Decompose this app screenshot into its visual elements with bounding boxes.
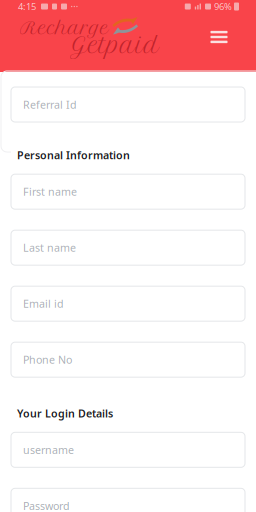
staticText: Getpaid bbox=[70, 32, 160, 59]
button[interactable]: username bbox=[11, 432, 245, 467]
button[interactable]: Menu bbox=[201, 19, 237, 55]
staticText: Last name bbox=[23, 241, 76, 255]
staticText: 4:15 bbox=[18, 0, 36, 13]
button[interactable]: Last name bbox=[11, 230, 245, 265]
staticText: Personal Information bbox=[17, 148, 130, 162]
button[interactable]: First name bbox=[11, 174, 245, 209]
staticText: Referral Id bbox=[23, 97, 77, 112]
staticText: Phone No bbox=[23, 353, 72, 367]
button[interactable]: Email id bbox=[11, 286, 245, 321]
staticText: Your Login Details bbox=[17, 406, 113, 420]
button[interactable]: Phone No bbox=[11, 342, 245, 377]
staticText: 96% bbox=[214, 0, 232, 13]
staticText: username bbox=[23, 443, 74, 457]
button[interactable]: Referral Id bbox=[11, 87, 245, 122]
staticText: Password bbox=[23, 499, 70, 512]
staticText: First name bbox=[23, 185, 77, 199]
staticText: Email id bbox=[23, 297, 64, 311]
button[interactable]: Password bbox=[11, 488, 245, 512]
staticText: Recharge bbox=[20, 17, 109, 39]
